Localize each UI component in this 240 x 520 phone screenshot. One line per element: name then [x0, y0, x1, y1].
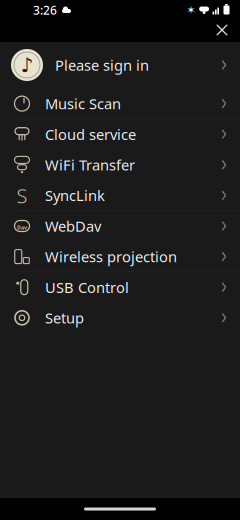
staticText: ♪: [20, 54, 33, 76]
staticText: S: [16, 182, 27, 209]
button[interactable]: S: [0, 180, 240, 210]
staticText: Wireless projection: [45, 247, 177, 266]
staticText: WiFi Transfer: [45, 155, 135, 175]
staticText: Setup: [45, 308, 84, 328]
button[interactable]: WiFi Transfer: [0, 150, 240, 180]
button[interactable]: Setup: [0, 303, 240, 333]
button[interactable]: Wireless projection: [0, 242, 240, 272]
staticText: Music Scan: [45, 94, 121, 113]
button[interactable]: Dav: [0, 211, 240, 241]
button[interactable]: Close: [209, 17, 235, 43]
button[interactable]: ♪: [0, 42, 240, 88]
button[interactable]: Music Scan: [0, 89, 240, 119]
staticText: Please sign in: [55, 55, 149, 75]
staticText: ✶: [187, 4, 196, 16]
staticText: Dav: [17, 224, 27, 231]
staticText: USB Control: [45, 277, 129, 297]
staticText: Cloud service: [45, 124, 136, 144]
button[interactable]: Cloud service: [0, 119, 240, 149]
staticText: SyncLink: [45, 186, 105, 205]
staticText: WebDav: [45, 216, 101, 236]
button[interactable]: USB Control: [0, 272, 240, 302]
staticText: 3:26: [33, 2, 57, 18]
